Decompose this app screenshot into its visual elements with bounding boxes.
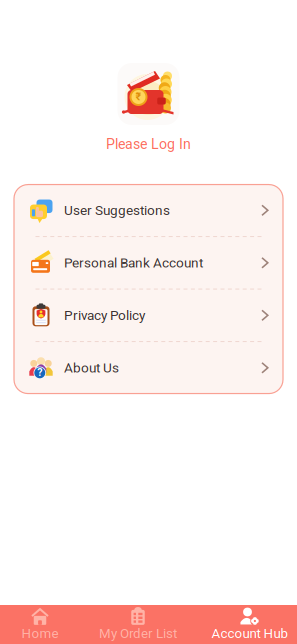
button[interactable]: Privacy Policy (14, 290, 283, 341)
staticText: My Order List (99, 626, 177, 641)
staticText: About Us (64, 360, 119, 376)
staticText: Home (21, 626, 58, 641)
button[interactable]: Please Log In (106, 136, 191, 153)
staticText: ? (37, 366, 42, 379)
staticText: Please Log In (106, 136, 191, 153)
button[interactable]: Home (0, 605, 80, 644)
staticText: ₹ (135, 90, 141, 103)
staticText: Account Hub (211, 626, 287, 641)
button[interactable]: Account Hub (196, 605, 297, 644)
button[interactable]: User Suggestions (14, 185, 283, 236)
staticText: User Suggestions (64, 202, 170, 218)
button[interactable]: My Order List (80, 605, 196, 644)
staticText: Personal Bank Account (64, 255, 203, 271)
staticText: Privacy Policy (64, 307, 145, 323)
button[interactable]: Personal Bank Account (14, 237, 283, 289)
button[interactable]: ? (14, 342, 283, 394)
